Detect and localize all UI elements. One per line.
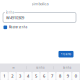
button[interactable]: senha: [27, 63, 53, 72]
staticText: 8: [59, 73, 61, 79]
staticText: Mostrar senha: [9, 25, 27, 29]
button[interactable]: Senha: [54, 63, 80, 72]
button[interactable]: 9: [64, 72, 72, 80]
button[interactable]: 5: [32, 72, 40, 80]
staticText: “W”: [11, 66, 15, 69]
staticText: 2: [11, 73, 13, 79]
staticText: Proximo: [60, 52, 71, 56]
button[interactable]: 1: [0, 72, 8, 80]
staticText: 7: [51, 73, 53, 79]
button[interactable]: 7: [48, 72, 56, 80]
staticText: senha: [36, 66, 44, 69]
staticText: W4910309: [6, 15, 24, 20]
staticText: 6: [43, 73, 45, 79]
staticText: Senha: [63, 66, 71, 69]
staticText: 1: [3, 73, 5, 79]
staticText: Senha: [6, 11, 14, 14]
button[interactable]: Proximo: [58, 51, 73, 57]
staticText: 5: [35, 73, 37, 79]
button[interactable]: 3: [16, 72, 24, 80]
button[interactable]: Mostrar senha: [3, 24, 42, 30]
staticText: simbolica: [31, 1, 48, 6]
button[interactable]: “W”: [0, 63, 26, 72]
button[interactable]: 2: [8, 72, 16, 80]
button[interactable]: 0: [72, 72, 79, 80]
staticText: 9: [67, 73, 69, 79]
staticText: 4: [27, 73, 29, 79]
button[interactable]: 6: [40, 72, 48, 80]
button[interactable]: 4: [24, 72, 32, 80]
staticText: 0: [75, 73, 77, 79]
button[interactable]: 8: [56, 72, 64, 80]
staticText: 3: [19, 73, 21, 79]
